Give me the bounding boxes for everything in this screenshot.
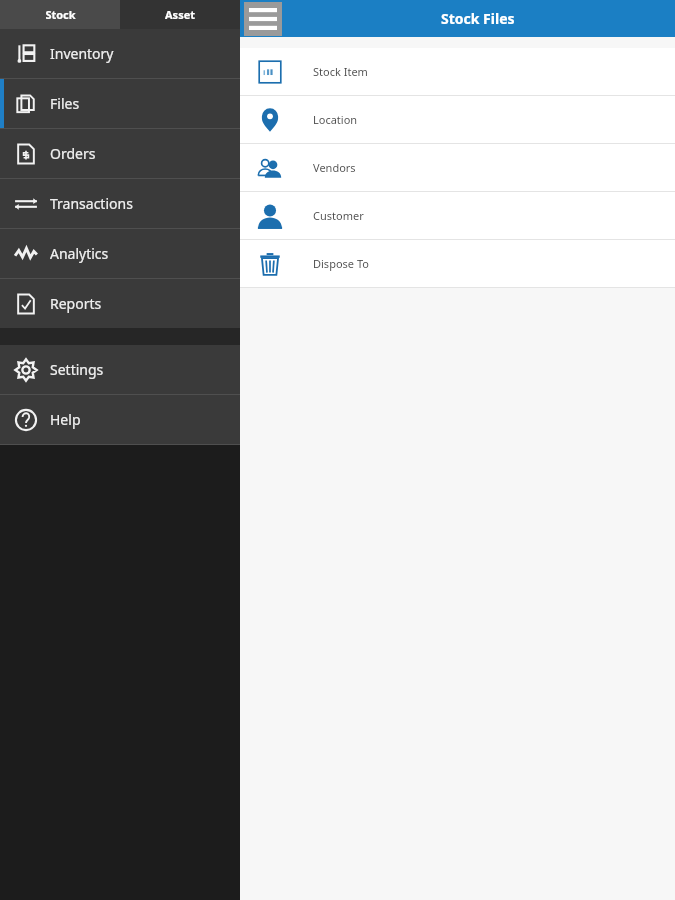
staticText: Files xyxy=(50,94,80,113)
button[interactable]: Reports xyxy=(0,279,240,328)
staticText: Asset xyxy=(165,7,195,22)
staticText: Help xyxy=(50,410,81,429)
button[interactable]: Help xyxy=(0,395,240,444)
button[interactable]: Asset xyxy=(120,0,240,29)
button[interactable]: Stock xyxy=(0,0,120,29)
staticText: Stock Files xyxy=(441,9,515,28)
staticText: Settings xyxy=(50,360,104,379)
button[interactable]: Location xyxy=(240,96,675,143)
staticText: Stock xyxy=(45,7,76,22)
button[interactable]: Settings xyxy=(0,345,240,394)
staticText: Orders xyxy=(50,144,96,163)
staticText: Analytics xyxy=(50,244,109,263)
staticText: Location xyxy=(313,112,358,127)
button[interactable]: Customer xyxy=(240,192,675,239)
button[interactable]: Transactions xyxy=(0,179,240,228)
button[interactable]: Stock Item xyxy=(240,48,675,95)
staticText: Vendors xyxy=(313,160,356,175)
staticText: Transactions xyxy=(50,194,133,213)
staticText: Stock Item xyxy=(313,64,368,79)
staticText: Reports xyxy=(50,294,102,313)
button[interactable]: Vendors xyxy=(240,144,675,191)
staticText: Customer xyxy=(313,208,364,223)
button[interactable]: Orders xyxy=(0,129,240,178)
button[interactable]: Files xyxy=(0,79,240,128)
button[interactable]: Open navigation menu xyxy=(244,2,282,36)
staticText: Inventory xyxy=(50,44,114,63)
button[interactable]: Analytics xyxy=(0,229,240,278)
button[interactable]: Dispose To xyxy=(240,240,675,287)
staticText: Dispose To xyxy=(313,256,369,271)
button[interactable]: Inventory xyxy=(0,29,240,78)
